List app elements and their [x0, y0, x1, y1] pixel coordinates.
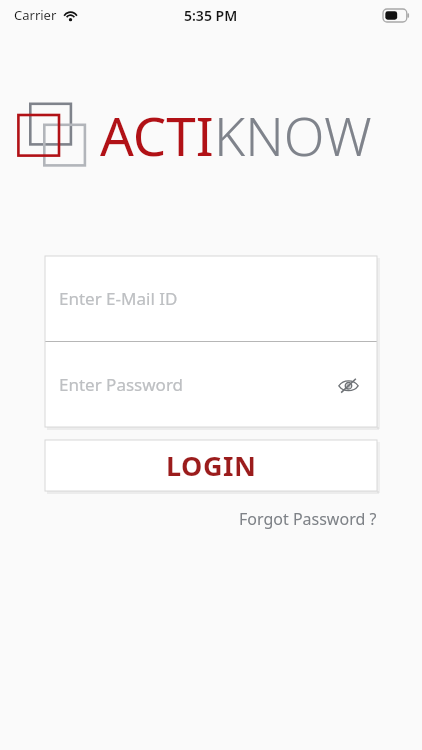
- button[interactable]: Enter Password: [45, 342, 377, 427]
- button[interactable]: LOGIN: [45, 440, 377, 491]
- button[interactable]: Forgot Password ?: [239, 504, 377, 534]
- staticText: LOGIN: [166, 447, 257, 484]
- button[interactable]: Show password: [333, 370, 363, 400]
- staticText: ACTI: [100, 99, 214, 171]
- staticText: KNOW: [214, 99, 372, 171]
- staticText: 5:35 PM: [184, 6, 238, 25]
- staticText: Carrier: [14, 6, 57, 24]
- staticText: Forgot Password ?: [239, 508, 377, 530]
- button[interactable]: Enter E-Mail ID: [45, 256, 377, 341]
- staticText: Enter Password: [59, 373, 333, 396]
- staticText: Enter E-Mail ID: [59, 287, 363, 310]
